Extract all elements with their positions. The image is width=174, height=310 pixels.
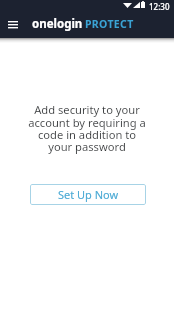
staticText: Add security to your account by requirin… [27,102,147,154]
button[interactable]: Open navigation menu [1,13,25,37]
staticText: onelogin [32,16,83,32]
staticText: PROTECT [85,17,134,31]
button[interactable]: Set Up Now [30,184,146,205]
staticText: Set Up Now [58,187,119,202]
staticText: 12:30 [149,1,170,12]
